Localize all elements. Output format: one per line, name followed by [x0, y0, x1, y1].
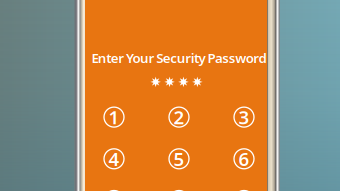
staticText: 5: [173, 146, 184, 171]
staticText: 4: [108, 146, 119, 171]
staticText: 8: [173, 188, 184, 191]
staticText: 7: [108, 188, 119, 191]
button[interactable]: 5: [169, 149, 189, 169]
staticText: 1: [108, 105, 119, 129]
staticText: Enter Your Security Password: [91, 49, 267, 67]
staticText: 3: [238, 105, 249, 129]
button[interactable]: 8: [169, 190, 189, 191]
button[interactable]: 3: [234, 107, 254, 127]
button[interactable]: 9: [234, 190, 254, 191]
button[interactable]: 2: [169, 107, 189, 127]
button[interactable]: 7: [104, 190, 124, 191]
button[interactable]: 4: [104, 149, 124, 169]
staticText: 9: [238, 188, 249, 191]
button[interactable]: 1: [104, 107, 124, 127]
staticText: 6: [238, 146, 249, 171]
button[interactable]: 6: [234, 149, 254, 169]
staticText: 2: [173, 105, 184, 129]
